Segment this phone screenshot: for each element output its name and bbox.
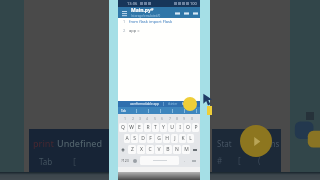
button[interactable]: Emoji — [131, 156, 139, 165]
button[interactable]: Play — [240, 125, 272, 157]
staticText: Q — [121, 124, 125, 131]
button[interactable]: C — [146, 145, 154, 154]
staticText: A — [125, 135, 129, 142]
button[interactable]: Stat — [212, 129, 281, 172]
staticText: Stat — [217, 138, 232, 149]
button[interactable]: S — [131, 134, 138, 143]
staticText: W — [129, 124, 134, 131]
staticText: from flask import Flask — [129, 19, 173, 24]
staticText: [ — [238, 155, 241, 166]
staticText: R — [146, 124, 150, 131]
staticText: Y — [162, 124, 165, 131]
button[interactable]: Search — [182, 9, 190, 17]
button[interactable]: Space — [140, 156, 179, 165]
staticText: 7 — [169, 116, 172, 121]
button[interactable]: H — [163, 134, 170, 143]
staticText: M — [184, 146, 189, 153]
staticText: 2 — [123, 28, 126, 33]
staticText: H — [165, 135, 169, 142]
button[interactable]: U — [168, 123, 175, 132]
button[interactable]: I — [176, 123, 183, 132]
button[interactable]: Z — [128, 145, 136, 154]
button[interactable]: D — [139, 134, 146, 143]
staticText: 9 — [183, 116, 186, 121]
button[interactable]: print — [29, 129, 113, 172]
button[interactable]: Shift — [119, 145, 127, 154]
staticText: N — [175, 146, 179, 153]
staticText: K — [181, 135, 185, 142]
staticText: app = — [129, 28, 140, 33]
button[interactable]: O — [184, 123, 191, 132]
button[interactable]: Y — [160, 123, 167, 132]
staticText: Z — [131, 146, 134, 153]
button[interactable]: tkinter — [168, 102, 178, 106]
button[interactable]: E — [136, 123, 143, 132]
staticText: 2 — [132, 116, 135, 121]
staticText: [ — [73, 155, 76, 167]
button[interactable]: userformatiable app — [130, 102, 159, 106]
button[interactable]: P — [192, 123, 199, 132]
button[interactable]: Undo — [173, 9, 181, 17]
button[interactable]: ?123 — [119, 156, 130, 165]
button[interactable]: Enter — [189, 156, 199, 165]
button[interactable]: Python tutorial video — [290, 108, 320, 172]
staticText: O — [186, 124, 190, 131]
staticText: Tab — [121, 109, 126, 113]
staticText: T — [154, 124, 157, 131]
staticText: Main.py* — [131, 7, 154, 14]
staticText: ?123 — [121, 158, 129, 163]
button[interactable]: Open navigation menu — [120, 9, 128, 17]
staticText: C — [148, 146, 152, 153]
staticText: X — [140, 146, 143, 153]
staticText: P — [194, 124, 198, 131]
staticText: 100 — [190, 1, 197, 6]
staticText: yms — [264, 138, 280, 149]
button[interactable]: G — [155, 134, 162, 143]
staticText: 0 — [191, 116, 194, 121]
staticText: /storage/emulated/0 — [131, 14, 161, 18]
button[interactable]: R — [144, 123, 151, 132]
button[interactable]: Q — [119, 123, 127, 132]
button[interactable]: N — [173, 145, 181, 154]
button[interactable]: F — [147, 134, 154, 143]
staticText: print — [33, 137, 54, 149]
button[interactable]: L — [187, 134, 194, 143]
button[interactable]: Backspace — [191, 145, 199, 154]
staticText: D — [141, 135, 145, 142]
staticText: E — [138, 124, 141, 131]
staticText: I — [179, 124, 181, 131]
button[interactable]: B — [164, 145, 172, 154]
button[interactable]: M — [182, 145, 190, 154]
staticText: ( — [258, 155, 261, 166]
button[interactable]: V — [155, 145, 163, 154]
staticText: B — [166, 146, 170, 153]
staticText: F — [149, 135, 152, 142]
staticText: 4 — [146, 116, 149, 121]
button[interactable]: from — [182, 102, 189, 106]
staticText: S — [133, 135, 136, 142]
staticText: 1 — [124, 116, 127, 121]
staticText: 8 — [176, 116, 179, 121]
button[interactable]: A — [124, 134, 130, 143]
staticText: . — [184, 158, 185, 163]
staticText: L — [189, 135, 192, 142]
staticText: G — [157, 135, 161, 142]
button[interactable]: More options — [191, 9, 199, 17]
button[interactable]: J — [171, 134, 178, 143]
staticText: 5 — [154, 116, 157, 121]
staticText: 1 — [123, 19, 126, 24]
staticText: 13:06 — [127, 1, 138, 6]
button[interactable]: T — [152, 123, 159, 132]
other: Pointer — [201, 93, 214, 106]
button[interactable]: X — [137, 145, 145, 154]
staticText: # — [217, 155, 223, 166]
button[interactable]: W — [128, 123, 135, 132]
staticText: 6 — [161, 116, 164, 121]
staticText: Tab — [39, 156, 53, 167]
staticText: U — [170, 124, 174, 131]
staticText: Undefined — [57, 137, 103, 149]
staticText: V — [157, 146, 161, 153]
button[interactable]: K — [179, 134, 186, 143]
staticText: J — [174, 135, 176, 142]
